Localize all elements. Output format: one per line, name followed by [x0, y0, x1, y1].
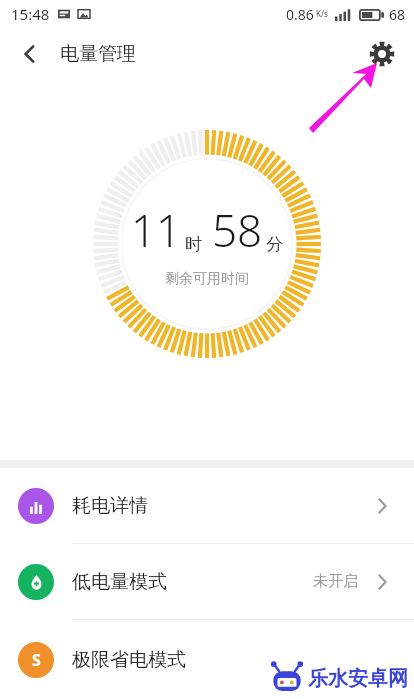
staticText: 未开启 [313, 572, 358, 591]
button[interactable]: S [0, 620, 414, 699]
staticText: 分 [266, 234, 283, 255]
staticText: K/s [316, 8, 328, 19]
staticText: 电量管理 [60, 42, 136, 66]
staticText: 极限省电模式 [72, 648, 186, 672]
staticText: 11 [131, 200, 182, 260]
staticText: S [32, 649, 41, 671]
button[interactable]: Back [8, 32, 52, 76]
button[interactable]: 耗电详情 [0, 468, 414, 543]
staticText: 15:48 [11, 4, 50, 24]
button[interactable]: Settings [360, 32, 404, 76]
staticText: 0.86 [286, 5, 314, 24]
staticText: 时 [185, 234, 202, 255]
staticText: 乐水安卓网 [308, 666, 408, 691]
staticText: 剩余可用时间 [165, 270, 249, 288]
button[interactable]: 低电量模式 [0, 544, 414, 619]
staticText: 耗电详情 [72, 494, 148, 518]
staticText: 58 [212, 200, 263, 260]
staticText: 68 [389, 5, 406, 24]
staticText: 低电量模式 [72, 570, 167, 594]
